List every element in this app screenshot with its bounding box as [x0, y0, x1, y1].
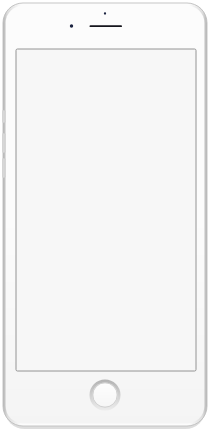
button[interactable]: White smartphone device mockup with blan… [0, 0, 210, 429]
other: Home button [0, 0, 210, 429]
